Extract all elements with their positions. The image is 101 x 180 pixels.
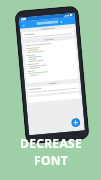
button[interactable]: Add	[71, 118, 81, 127]
button[interactable]: Back	[19, 17, 76, 29]
staticText: FONT	[34, 152, 68, 168]
button[interactable]: Back	[21, 23, 26, 27]
button[interactable]	[22, 28, 75, 39]
button[interactable]	[23, 39, 78, 83]
button[interactable]	[28, 93, 80, 103]
button[interactable]	[27, 83, 79, 95]
staticText: DECREASE	[20, 135, 82, 151]
